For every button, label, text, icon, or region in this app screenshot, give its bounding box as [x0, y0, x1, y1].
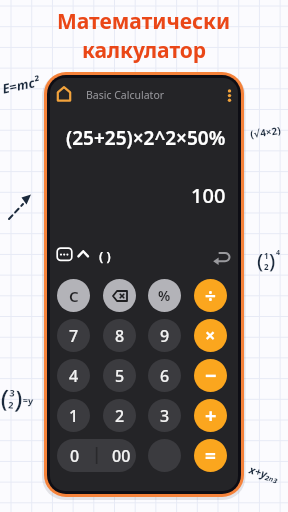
- button[interactable]: C: [57, 279, 90, 312]
- staticText: Математически: [57, 7, 231, 36]
- button[interactable]: 6: [148, 359, 181, 392]
- button[interactable]: ×: [194, 319, 227, 352]
- staticText: 1: [69, 405, 79, 427]
- staticText: =: [205, 443, 216, 469]
- button[interactable]: +: [194, 399, 227, 432]
- staticText: 100: [191, 182, 226, 209]
- staticText: (: [0, 381, 10, 414]
- button[interactable]: 4: [57, 359, 90, 392]
- staticText: ): [269, 247, 276, 274]
- button[interactable]: −: [194, 359, 227, 392]
- staticText: 1: [264, 250, 269, 261]
- staticText: ×: [205, 323, 216, 348]
- staticText: 6: [160, 365, 170, 387]
- staticText: калкулатор: [82, 36, 207, 65]
- staticText: 2: [264, 261, 269, 272]
- staticText: E=mc²: [0, 72, 41, 98]
- button[interactable]: 1: [57, 399, 90, 432]
- staticText: 5: [115, 365, 125, 387]
- staticText: (√4×2): [249, 123, 282, 141]
- staticText: =y: [22, 393, 34, 406]
- staticText: Basic Calculator: [86, 88, 165, 102]
- button[interactable]: [148, 439, 181, 472]
- staticText: %: [158, 286, 171, 305]
- button[interactable]: 7: [57, 319, 90, 352]
- staticText: (: [257, 247, 264, 274]
- staticText: −: [205, 362, 217, 389]
- staticText: +: [205, 402, 217, 429]
- staticText: 2: [8, 398, 15, 411]
- staticText: x+y₂ₙ₃: [247, 462, 281, 485]
- button[interactable]: [103, 279, 136, 312]
- button[interactable]: 0: [57, 439, 136, 472]
- staticText: ( ): [99, 247, 111, 265]
- staticText: 9: [160, 325, 170, 347]
- staticText: 2: [115, 405, 125, 427]
- staticText: (25+25)×2^2×50%: [66, 125, 226, 151]
- button[interactable]: ÷: [194, 279, 227, 312]
- button[interactable]: %: [148, 279, 181, 312]
- staticText: C: [69, 286, 79, 306]
- staticText: 8: [115, 325, 125, 347]
- staticText: 4: [69, 365, 79, 387]
- button[interactable]: =: [194, 439, 227, 472]
- staticText: 00: [112, 445, 131, 467]
- staticText: 3: [160, 405, 170, 427]
- staticText: ÷: [205, 283, 216, 309]
- staticText: 3: [9, 386, 16, 399]
- staticText: 4: [276, 248, 281, 258]
- button[interactable]: 8: [103, 319, 136, 352]
- button[interactable]: 5: [103, 359, 136, 392]
- staticText: 7: [69, 325, 79, 347]
- staticText: 0: [70, 445, 80, 467]
- button[interactable]: 9: [148, 319, 181, 352]
- button[interactable]: 3: [148, 399, 181, 432]
- staticText: ): [14, 382, 24, 415]
- button[interactable]: 2: [103, 399, 136, 432]
